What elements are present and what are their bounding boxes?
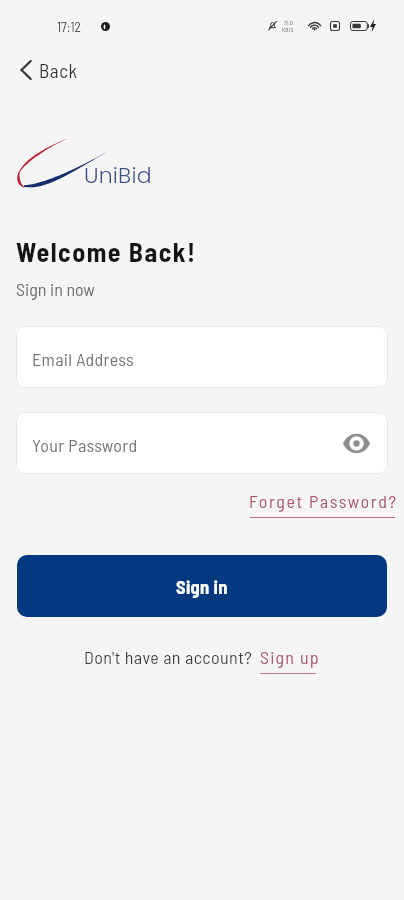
staticText: Your Password	[32, 434, 138, 456]
staticText: UniBid	[84, 160, 152, 191]
other: Show password	[343, 434, 370, 453]
button[interactable]: Email Address	[16, 326, 388, 388]
staticText: 17:12	[57, 18, 81, 34]
button[interactable]: Forget Password?	[248, 484, 399, 506]
staticText: KB/S	[282, 26, 294, 33]
staticText: Forget Password?	[249, 490, 398, 512]
staticText: Back	[39, 59, 78, 82]
staticText: Don't have an account?	[84, 646, 253, 668]
staticText: Sign up	[260, 646, 320, 668]
staticText: Email Address	[32, 348, 134, 370]
button[interactable]: Your Password	[16, 412, 388, 474]
staticText: 31.0	[284, 19, 293, 26]
button[interactable]: Back	[14, 52, 78, 88]
staticText: Sign in now	[16, 278, 95, 300]
button[interactable]: Sign up	[260, 646, 320, 668]
staticText: Welcome Back!	[16, 236, 197, 267]
other: Back	[14, 59, 36, 81]
button[interactable]: Sign in	[17, 555, 387, 617]
staticText: Sign in	[176, 575, 228, 597]
